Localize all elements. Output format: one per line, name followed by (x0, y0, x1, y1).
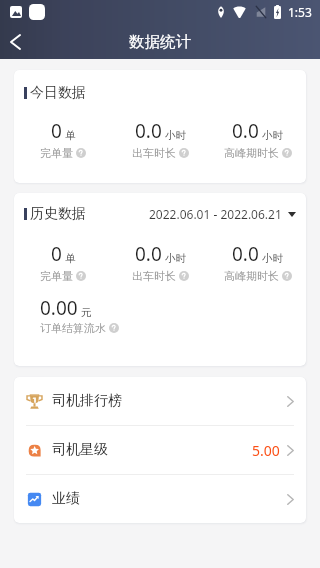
staticText: 5.00 (252, 441, 280, 460)
staticText: 0.0 (232, 118, 259, 144)
staticText: 元 (81, 306, 92, 319)
staticText: 订单结算流水 (40, 321, 106, 335)
staticText: 小时 (262, 129, 283, 142)
staticText: 0 (51, 118, 62, 144)
staticText: 高峰期时长 (224, 269, 279, 283)
staticText: 出车时长 (132, 269, 176, 283)
button[interactable]: 司机排行榜 (14, 377, 306, 425)
staticText: 小时 (165, 129, 186, 142)
staticText: 0.0 (232, 241, 259, 267)
staticText: 1:53 (288, 4, 312, 20)
button[interactable]: 业绩 (14, 475, 306, 523)
staticText: 今日数据 (30, 84, 86, 102)
staticText: 小时 (262, 252, 283, 265)
staticText: 高峰期时长 (224, 146, 279, 160)
staticText: 历史数据 (30, 205, 86, 223)
button[interactable]: Back (0, 24, 30, 59)
staticText: 业绩 (52, 490, 80, 508)
staticText: 数据统计 (129, 32, 191, 52)
staticText: 完单量 (40, 146, 73, 160)
staticText: 0.0 (135, 241, 162, 267)
staticText: 司机排行榜 (52, 392, 122, 410)
button[interactable]: 司机星级 (14, 426, 306, 474)
staticText: 2022.06.01 - 2022.06.21 (149, 206, 282, 222)
staticText: 0.0 (135, 118, 162, 144)
staticText: 0.00 (40, 295, 78, 321)
staticText: 小时 (165, 252, 186, 265)
staticText: 单 (65, 252, 76, 265)
staticText: 0 (51, 241, 62, 267)
staticText: 单 (65, 129, 76, 142)
staticText: 司机星级 (52, 441, 108, 459)
button[interactable]: 2022.06.01 - 2022.06.21 (149, 206, 296, 222)
staticText: 完单量 (40, 269, 73, 283)
staticText: 出车时长 (132, 146, 176, 160)
